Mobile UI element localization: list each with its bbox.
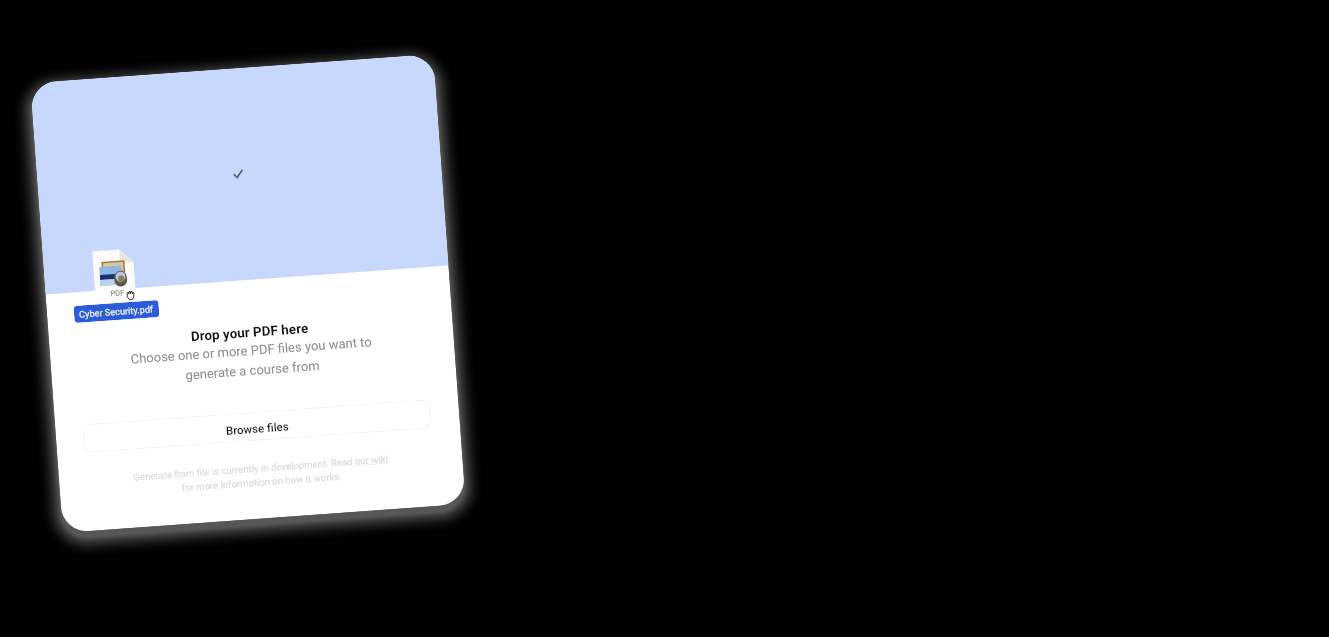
staticText: Cyber Security.pdf	[79, 303, 154, 320]
staticText: Generate from file is currently in devel…	[133, 453, 390, 497]
staticText: Browse files	[225, 419, 289, 437]
other: Done	[233, 169, 244, 180]
button[interactable]: Browse files	[83, 399, 431, 453]
other: Drag	[126, 290, 136, 301]
staticText: Drop your PDF here	[190, 320, 309, 344]
staticText: Choose one or more PDF files you want to…	[130, 334, 374, 387]
staticText: PDF	[110, 288, 124, 298]
